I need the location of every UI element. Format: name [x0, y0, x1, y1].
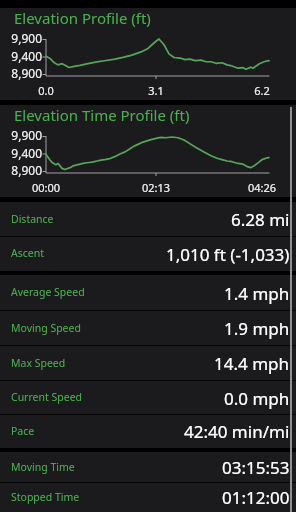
- button[interactable]: Distance: [0, 202, 296, 237]
- staticText: 9,400: [0, 145, 42, 161]
- button[interactable]: Pace: [0, 415, 296, 448]
- button[interactable]: Max Speed: [0, 346, 296, 381]
- staticText: Max Speed: [11, 356, 66, 370]
- staticText: 9,900: [0, 127, 42, 143]
- staticText: Moving Time: [11, 460, 75, 474]
- button[interactable]: Ascent: [0, 237, 296, 271]
- staticText: 1.9 mph: [224, 317, 290, 340]
- staticText: 14.4 mph: [214, 352, 290, 375]
- staticText: 9,400: [0, 48, 42, 64]
- staticText: 9,900: [0, 30, 42, 46]
- staticText: Distance: [11, 212, 54, 226]
- staticText: Moving Speed: [11, 321, 81, 335]
- staticText: 42:40 min/mi: [184, 420, 290, 443]
- staticText: 01:12:00: [222, 486, 290, 509]
- staticText: 1.4 mph: [224, 282, 290, 305]
- staticText: 0.0 mph: [224, 387, 290, 410]
- staticText: 8,900: [0, 162, 42, 178]
- staticText: Ascent: [11, 246, 44, 260]
- staticText: 0.0: [21, 83, 71, 98]
- staticText: Stopped Time: [11, 490, 80, 504]
- staticText: Elevation Profile (ft): [14, 8, 151, 28]
- staticText: 6.28 mi: [231, 208, 290, 231]
- staticText: Pace: [11, 424, 35, 438]
- button[interactable]: Elevation Time Profile (ft): [0, 105, 296, 197]
- staticText: 02:13: [131, 180, 181, 195]
- staticText: 6.2: [237, 83, 287, 98]
- staticText: 8,900: [0, 65, 42, 81]
- button[interactable]: Moving Speed: [0, 311, 296, 346]
- button[interactable]: Elevation Profile (ft): [0, 8, 296, 100]
- staticText: 1,010 ft (-1,033): [166, 243, 290, 266]
- button[interactable]: Moving Time: [0, 452, 296, 483]
- button[interactable]: Stopped Time: [0, 483, 296, 512]
- staticText: Elevation Time Profile (ft): [14, 105, 190, 125]
- button[interactable]: Current Speed: [0, 381, 296, 415]
- button[interactable]: Average Speed: [0, 275, 296, 311]
- staticText: 00:00: [21, 180, 71, 195]
- staticText: Average Speed: [11, 285, 85, 299]
- staticText: Current Speed: [11, 390, 83, 404]
- staticText: 03:15:53: [222, 456, 290, 479]
- staticText: 04:26: [237, 180, 287, 195]
- staticText: 3.1: [131, 83, 181, 98]
